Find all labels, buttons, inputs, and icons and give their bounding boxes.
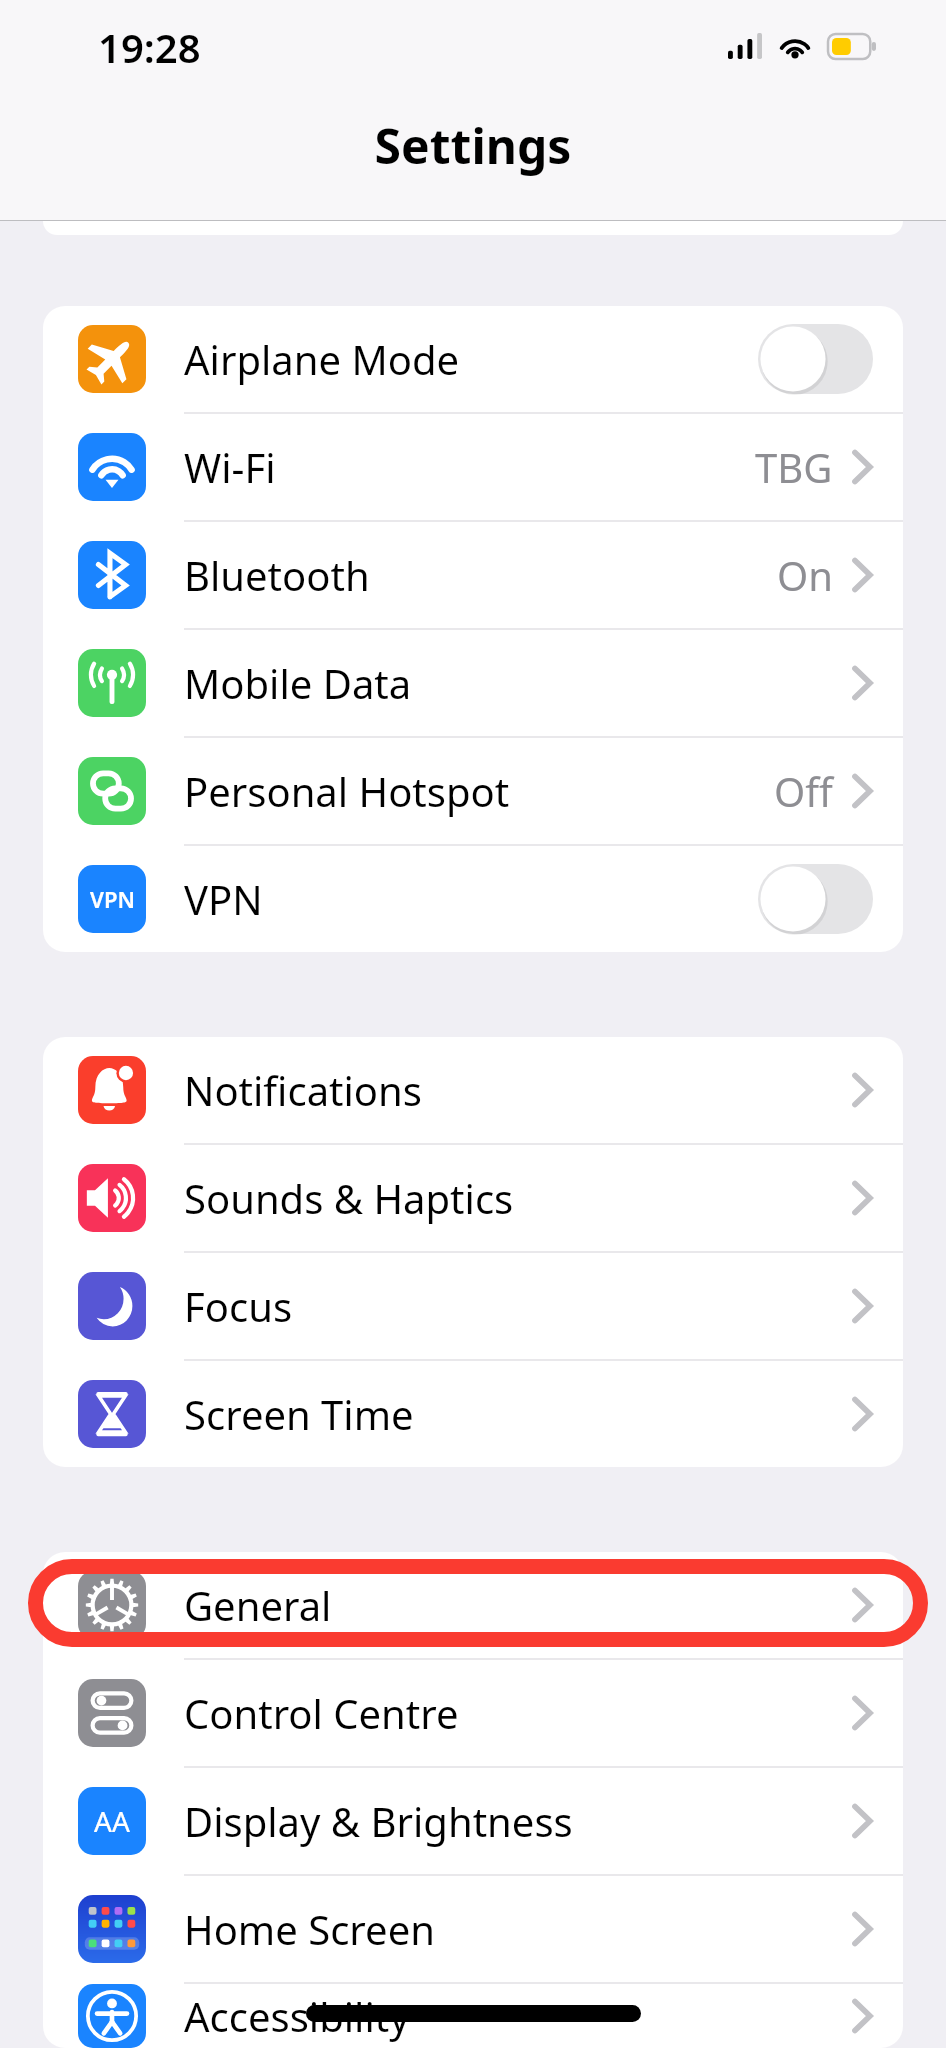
button[interactable]: Toggle	[758, 864, 873, 934]
button[interactable]: Airplane Mode	[43, 306, 903, 412]
button[interactable]: Bluetooth	[43, 522, 903, 628]
button[interactable]: General	[43, 1552, 903, 1658]
staticText: Notifications	[184, 1063, 422, 1117]
button[interactable]: Personal Hotspot	[43, 738, 903, 844]
button[interactable]: Notifications	[43, 1037, 903, 1143]
staticText: Control Centre	[184, 1686, 459, 1740]
button[interactable]: Screen Time	[43, 1361, 903, 1467]
staticText: Personal Hotspot	[184, 764, 510, 818]
staticText: On	[777, 548, 833, 602]
button[interactable]: Sounds & Haptics	[43, 1145, 903, 1251]
staticText: 19:28	[98, 20, 201, 74]
staticText: VPN	[90, 884, 135, 914]
staticText: Focus	[184, 1279, 293, 1333]
button[interactable]: Mobile Data	[43, 630, 903, 736]
button[interactable]: Focus	[43, 1253, 903, 1359]
staticText: Home Screen	[184, 1902, 435, 1956]
staticText: Accessibility	[184, 1989, 410, 2043]
staticText: Bluetooth	[184, 548, 370, 602]
button[interactable]: VPN	[43, 846, 903, 952]
button[interactable]: Wi-Fi	[43, 414, 903, 520]
staticText: AA	[94, 1802, 130, 1840]
button[interactable]: Accessibility	[43, 1984, 903, 2048]
staticText: VPN	[184, 872, 263, 926]
staticText: Wi-Fi	[184, 440, 276, 494]
staticText: Mobile Data	[184, 656, 412, 710]
staticText: Off	[774, 764, 833, 818]
staticText: Display & Brightness	[184, 1794, 573, 1848]
staticText: General	[184, 1578, 332, 1632]
staticText: Screen Time	[184, 1387, 414, 1441]
staticText: TBG	[755, 440, 833, 494]
button[interactable]: AA	[43, 1768, 903, 1874]
staticText: Settings	[0, 113, 946, 178]
button[interactable]: Control Centre	[43, 1660, 903, 1766]
staticText: Sounds & Haptics	[184, 1171, 514, 1225]
staticText: Airplane Mode	[184, 332, 460, 386]
button[interactable]: Toggle	[758, 324, 873, 394]
button[interactable]: Home Screen	[43, 1876, 903, 1982]
